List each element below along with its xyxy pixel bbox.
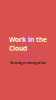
staticText: Storage categories — [10, 60, 46, 65]
staticText: Work in the Cloud — [9, 35, 47, 53]
staticText: 71.2GB — [19, 53, 37, 60]
